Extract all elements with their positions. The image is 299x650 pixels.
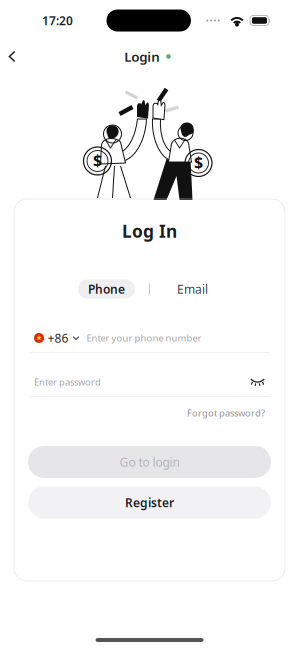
- staticText: Forgot password?: [187, 407, 265, 419]
- button[interactable]: +86: [34, 327, 79, 349]
- staticText: Email: [177, 281, 208, 297]
- staticText: Enter password: [34, 376, 101, 388]
- staticText: $: [93, 149, 102, 171]
- staticText: Register: [125, 494, 174, 510]
- staticText: Go to login: [119, 454, 179, 470]
- staticText: Phone: [88, 281, 125, 297]
- button[interactable]: Forgot password?: [187, 404, 265, 421]
- button[interactable]: Phone: [78, 279, 135, 298]
- button[interactable]: Register: [28, 486, 271, 518]
- staticText: Login: [124, 48, 160, 65]
- staticText: 17:20: [42, 12, 73, 28]
- staticText: Enter your phone number: [86, 332, 201, 344]
- button[interactable]: Email: [164, 279, 221, 298]
- button[interactable]: Back: [0, 42, 25, 71]
- staticText: $: [194, 151, 203, 173]
- button[interactable]: Go to login: [28, 446, 271, 478]
- staticText: Log In: [122, 219, 177, 242]
- button[interactable]: Show password: [250, 377, 265, 386]
- staticText: +86: [47, 330, 68, 346]
